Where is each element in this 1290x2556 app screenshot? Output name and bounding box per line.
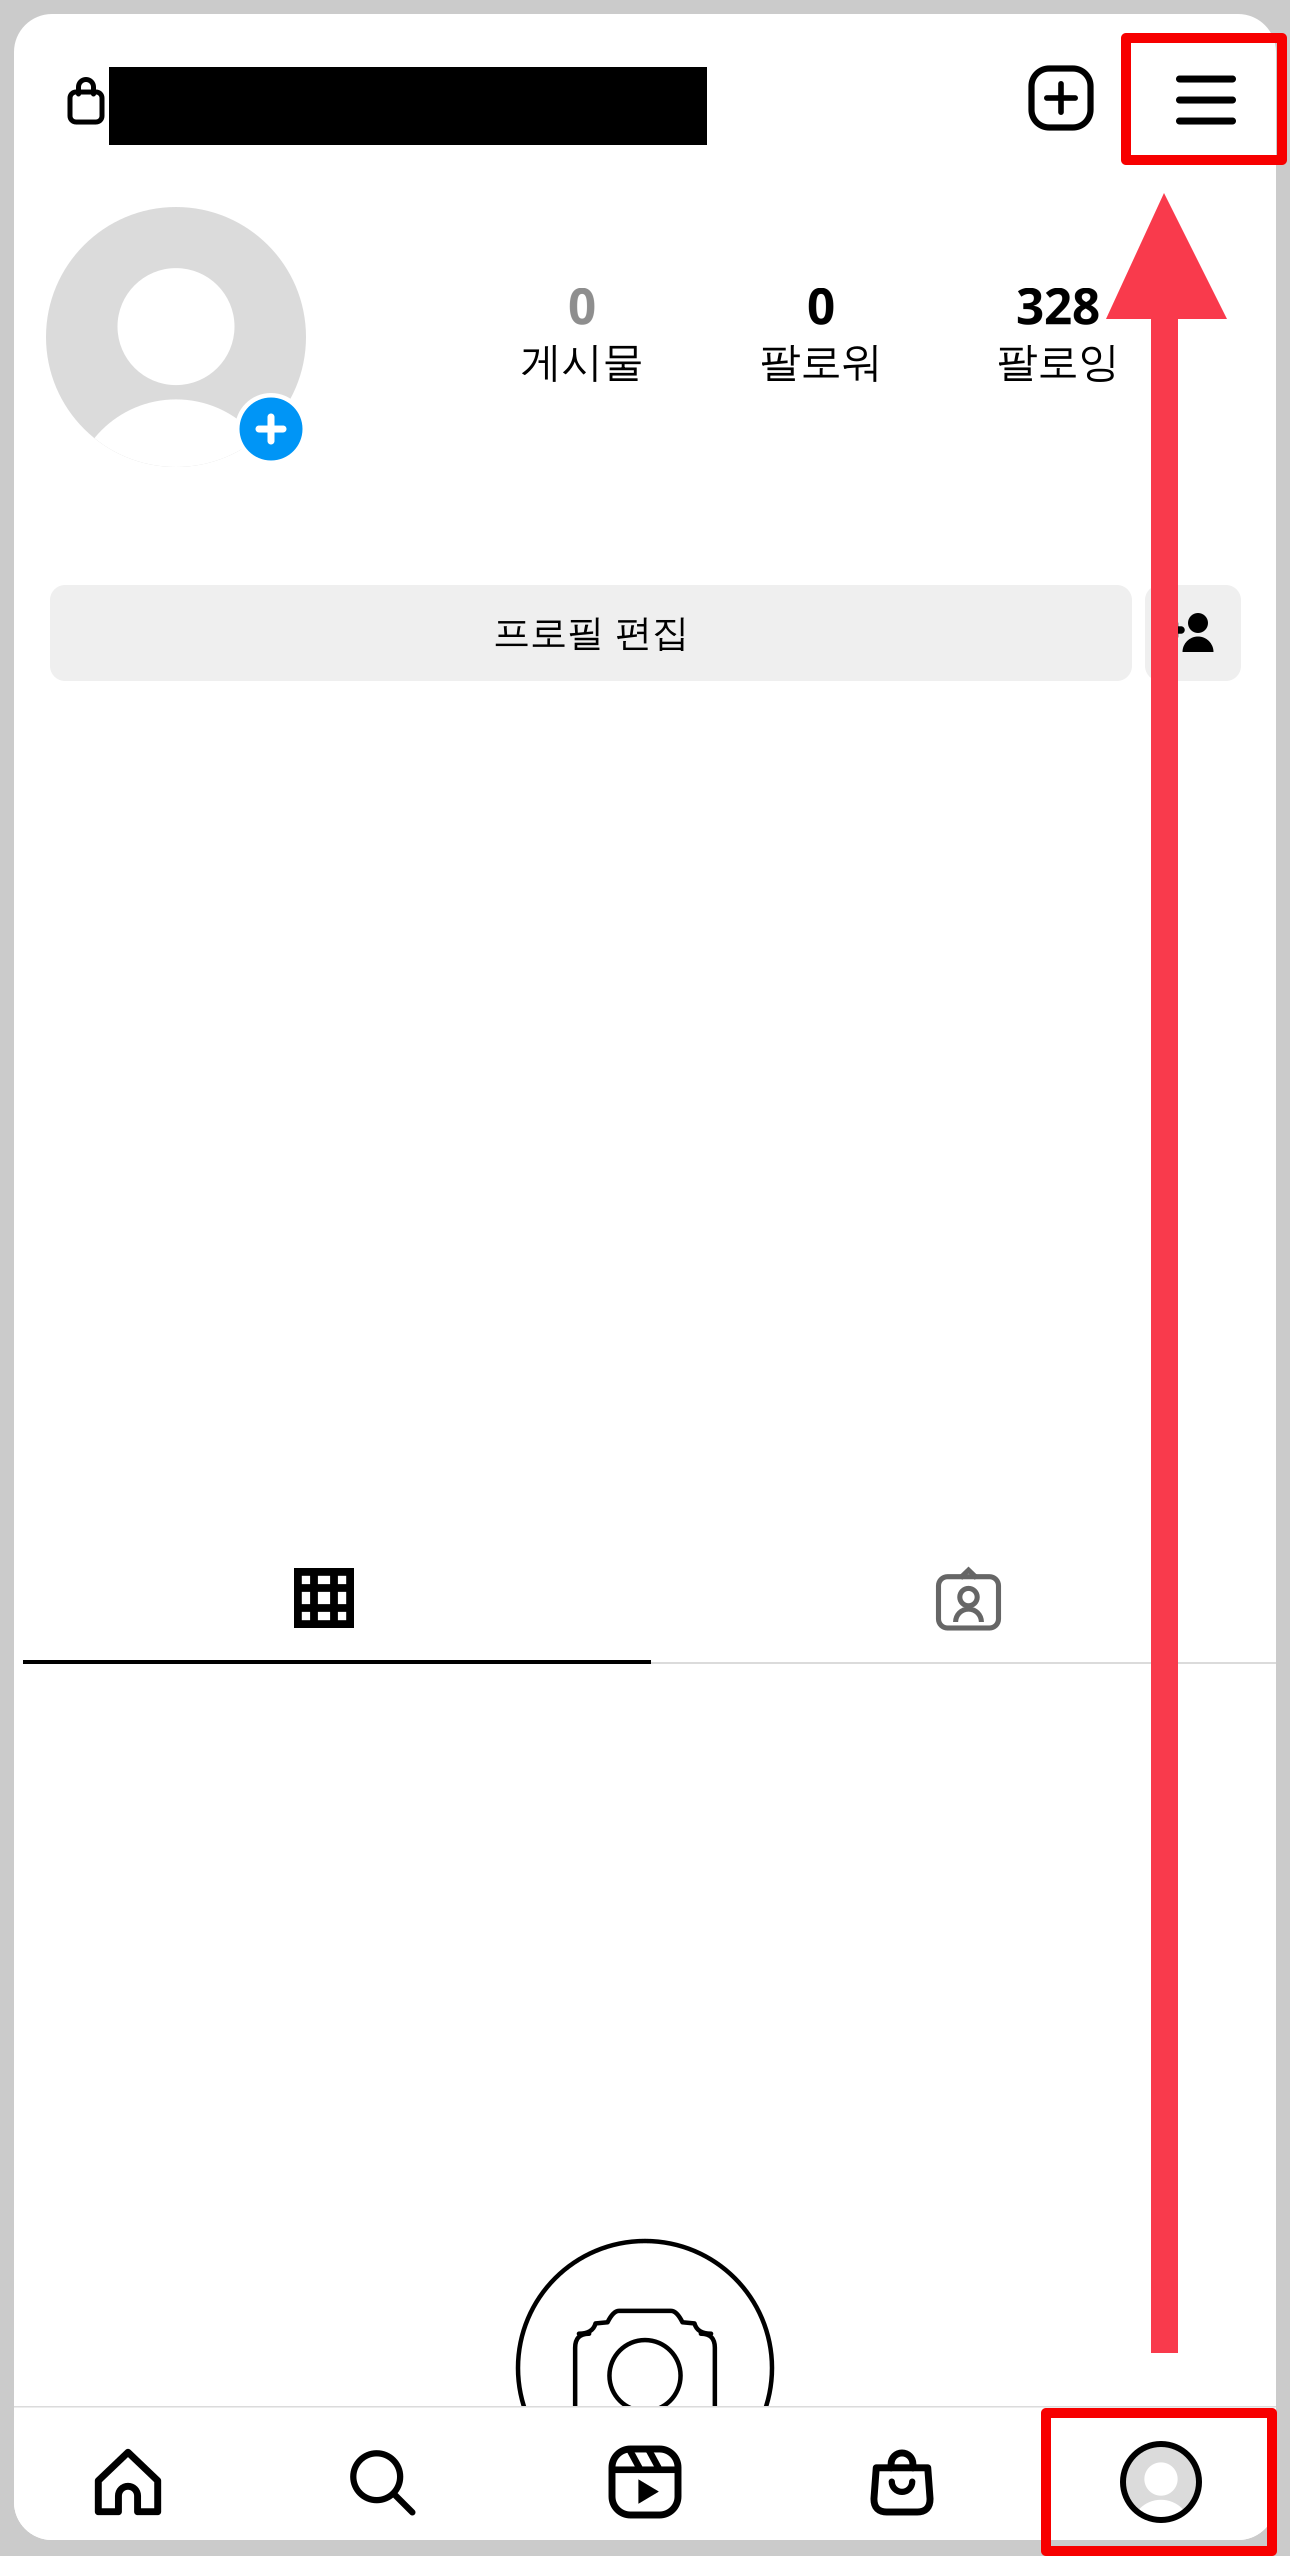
button[interactable]: Home — [8, 2415, 248, 2549]
button[interactable]: New post — [1006, 43, 1116, 153]
button[interactable]: 328 — [953, 268, 1163, 392]
button[interactable]: 0 — [477, 268, 687, 392]
staticText: 0 — [807, 272, 835, 338]
button[interactable]: Profile photo — [41, 202, 311, 472]
staticText: 게시물 — [520, 337, 643, 388]
button[interactable]: 0 — [716, 268, 926, 392]
button[interactable]: Reels — [525, 2415, 765, 2549]
staticText: 0 — [568, 272, 596, 338]
button[interactable]: Shop — [782, 2415, 1022, 2549]
button[interactable]: Posts grid — [23, 1546, 651, 1664]
button[interactable]: Menu — [1146, 45, 1266, 155]
staticText: 팔로잉 — [996, 337, 1119, 388]
staticText: 프로필 편집 — [493, 610, 689, 656]
button[interactable]: Discover people — [1145, 585, 1241, 681]
button[interactable]: Search — [262, 2415, 502, 2549]
staticText: 팔로워 — [759, 337, 882, 388]
staticText: 328 — [1016, 272, 1100, 338]
button[interactable]: Tagged posts — [651, 1546, 1276, 1664]
button[interactable]: 프로필 편집 — [50, 585, 1132, 681]
button[interactable]: Profile — [1041, 2415, 1281, 2549]
